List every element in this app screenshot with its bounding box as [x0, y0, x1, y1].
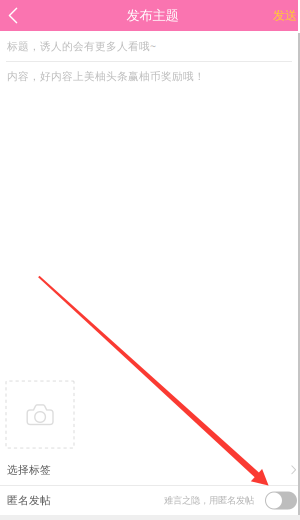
button[interactable]: 匿名发帖	[0, 486, 300, 515]
staticText: 选择标签	[7, 463, 51, 476]
staticText: 难言之隐，用匿名发帖	[164, 495, 254, 506]
staticText: 内容，好内容上美柚头条赢柚币奖励哦！	[7, 70, 205, 83]
button[interactable]: Add photo	[6, 381, 74, 448]
staticText: 发送	[273, 8, 297, 23]
button[interactable]: Back	[0, 0, 30, 31]
staticText: 匿名发帖	[7, 494, 51, 507]
button[interactable]: 选择标签	[0, 455, 300, 485]
staticText: 发布主题	[126, 7, 178, 24]
button[interactable]: 发送	[261, 0, 300, 31]
staticText: 标题，诱人的会有更多人看哦~	[7, 39, 156, 53]
